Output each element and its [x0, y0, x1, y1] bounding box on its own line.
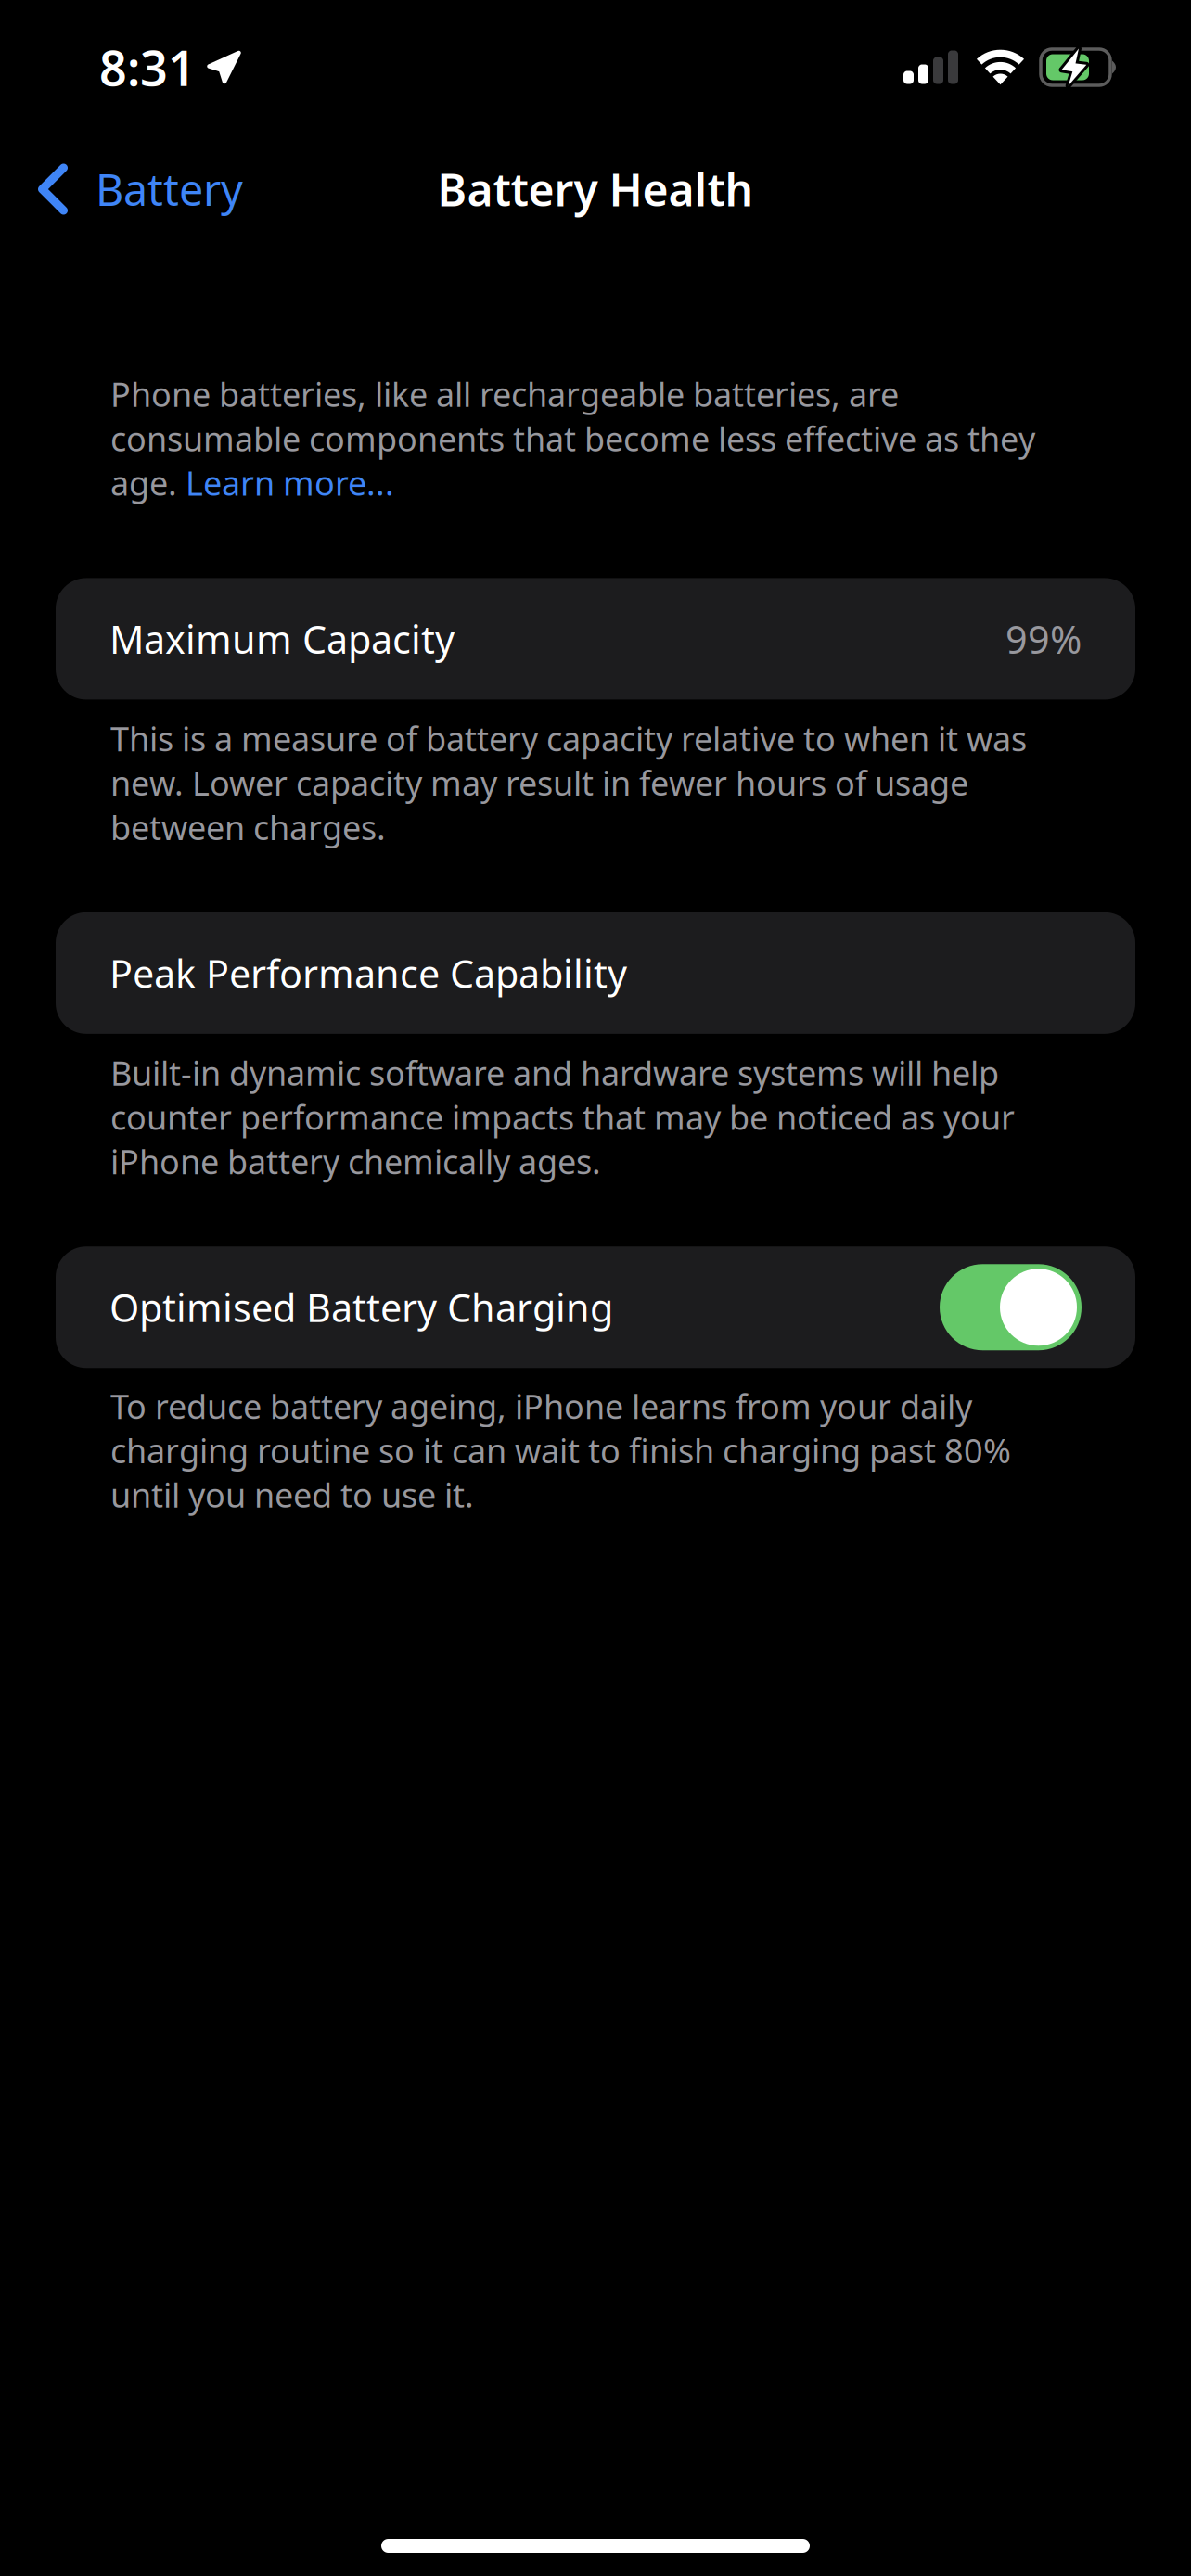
staticText: Battery Health — [437, 160, 754, 219]
staticText: 8:31 — [99, 35, 196, 99]
staticText: This is a measure of battery capacity re… — [110, 716, 1027, 849]
staticText: 99% — [1005, 613, 1082, 664]
button[interactable]: Battery — [0, 146, 265, 233]
staticText: To reduce battery ageing, iPhone learns … — [110, 1384, 1011, 1517]
button[interactable]: Optimised Battery Charging — [56, 1247, 1135, 1368]
staticText: Phone batteries, like all rechargeable b… — [110, 372, 1035, 505]
staticText: Battery — [96, 160, 243, 218]
staticText: Built-in dynamic software and hardware s… — [110, 1050, 1015, 1183]
button[interactable]: Maximum Capacity — [56, 578, 1135, 700]
button[interactable]: Peak Performance Capability — [56, 912, 1135, 1034]
staticText: Peak Performance Capability — [109, 948, 627, 999]
staticText: Maximum Capacity — [109, 613, 455, 664]
staticText: Optimised Battery Charging — [109, 1282, 613, 1333]
